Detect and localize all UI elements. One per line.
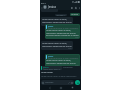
button[interactable]: Recent apps: [70, 85, 75, 90]
staticText: Lorem ipsum dolor sit amet, consectetur …: [42, 42, 72, 47]
staticText: 9:41: [41, 1, 46, 4]
staticText: YESTERDAY: [56, 14, 66, 16]
staticText: online: [48, 8, 54, 10]
button[interactable]: Lorem ipsum dolor sit amet, consectetur …: [41, 17, 73, 26]
staticText: Jessica: [48, 5, 56, 8]
staticText: Lorem ipsum dolor sit amet, consectetur …: [48, 27, 79, 29]
staticText: 10:21: [75, 36, 79, 38]
button[interactable]: More options: [78, 5, 80, 10]
staticText: Lorem ipsum dolor sit: [43, 68, 61, 70]
staticText: Lorem ipsum dolor sit amet, consectetur …: [42, 18, 72, 23]
button[interactable]: Lorem ipsum dolor sit amet, consectetur …: [41, 41, 73, 50]
staticText: consectetur: [63, 66, 73, 68]
staticText: 10:21: [68, 23, 72, 25]
staticText: Lorem ipsum: [41, 71, 53, 74]
button[interactable]: Home: [58, 85, 63, 90]
button[interactable]: Jessica: [45, 24, 80, 39]
button[interactable]: Back: [47, 85, 52, 90]
staticText: Lorem ipsum dolor sit amet, consectetur …: [46, 29, 79, 36]
staticText: Lorem ipsum dolor sit amet, consectetur …: [46, 59, 79, 64]
staticText: Jessica: [43, 66, 49, 68]
staticText: 10:21: [75, 64, 79, 66]
button[interactable]: YESTERDAY: [55, 14, 67, 16]
staticText: 10:21: [68, 47, 72, 49]
staticText: Lorem ipsum dolor sit amet consectetur: [41, 75, 77, 78]
button[interactable]: Hi there: [70, 13, 80, 16]
staticText: Message: [45, 81, 54, 84]
staticText: Lorem ipsum dolor sit amet, consectetur …: [48, 57, 79, 59]
staticText: Hi there: [71, 13, 79, 16]
button[interactable]: Call: [74, 5, 78, 10]
button[interactable]: Video call: [70, 5, 74, 10]
button[interactable]: Message: [41, 80, 74, 85]
button[interactable]: Send voice message: [75, 80, 80, 85]
button[interactable]: Back: [40, 5, 43, 10]
staticText: Jessica: [48, 55, 54, 57]
staticText: Jessica: [48, 25, 54, 27]
button[interactable]: Jessica: [45, 54, 80, 67]
button[interactable]: Jessica: [41, 66, 62, 70]
